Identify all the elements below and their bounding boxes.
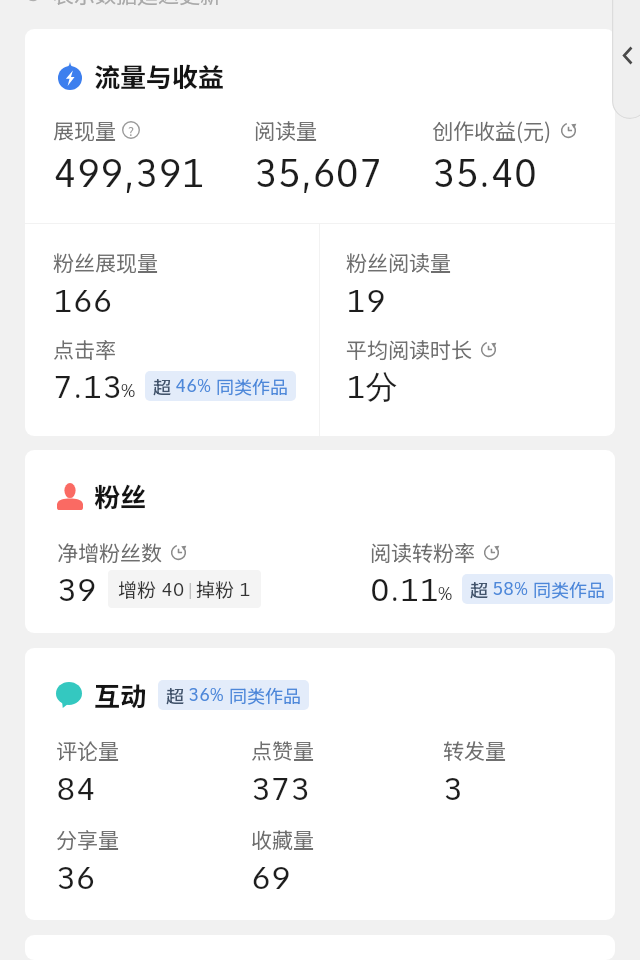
- staticText: 36: [56, 858, 96, 896]
- staticText: 阅读转粉率: [370, 537, 475, 567]
- staticText: 39: [57, 570, 97, 608]
- staticText: |: [185, 578, 196, 600]
- staticText: 同类作品: [533, 576, 605, 602]
- staticText: ?: [128, 121, 134, 139]
- staticText: 1分: [346, 367, 398, 407]
- staticText: 创作收益(元): [432, 115, 552, 145]
- button[interactable]: 超: [158, 680, 309, 710]
- staticText: 互动: [94, 676, 147, 714]
- button[interactable]: 超: [145, 371, 296, 401]
- staticText: 评论量: [56, 735, 119, 765]
- staticText: %: [438, 582, 454, 605]
- staticText: 1: [239, 578, 251, 601]
- button[interactable]: 超: [462, 574, 613, 604]
- staticText: 19: [346, 281, 386, 319]
- staticText: 转发量: [443, 735, 506, 765]
- staticText: %: [121, 379, 137, 402]
- staticText: 同类作品: [216, 373, 288, 399]
- staticText: 69: [251, 858, 291, 896]
- staticText: 0.11: [370, 570, 439, 608]
- staticText: 掉粉: [196, 575, 239, 603]
- staticText: 点击率: [53, 334, 116, 364]
- staticText: 收藏量: [251, 824, 314, 854]
- staticText: 84: [56, 769, 96, 807]
- staticText: 展现量: [53, 115, 116, 145]
- staticText: 超: [153, 373, 171, 399]
- staticText: 平均阅读时长: [346, 334, 472, 364]
- staticText: 同类作品: [229, 682, 301, 708]
- button[interactable]: Collapse panel: [612, 0, 640, 119]
- staticText: 阅读量: [254, 115, 317, 145]
- staticText: 40: [161, 578, 185, 601]
- staticText: 分享量: [56, 824, 119, 854]
- staticText: 35.40: [432, 151, 538, 197]
- staticText: 373: [251, 769, 310, 807]
- staticText: 499,391: [53, 151, 205, 197]
- staticText: 流量与收益: [94, 57, 225, 95]
- staticText: 35,607: [254, 151, 383, 197]
- staticText: 粉丝阅读量: [346, 247, 451, 277]
- staticText: 46%: [175, 375, 212, 397]
- button[interactable]: 增粉: [108, 570, 261, 608]
- staticText: 166: [53, 281, 113, 319]
- staticText: 3: [443, 769, 463, 807]
- staticText: 粉丝展现量: [53, 247, 158, 277]
- staticText: 增粉: [118, 575, 161, 603]
- staticText: 58%: [492, 578, 529, 600]
- staticText: 净增粉丝数: [57, 537, 162, 567]
- staticText: 点赞量: [251, 735, 314, 765]
- staticText: 表示数据延迟更新: [53, 0, 221, 8]
- staticText: 7.13: [53, 367, 122, 405]
- staticText: 超: [166, 682, 184, 708]
- staticText: 36%: [188, 684, 225, 706]
- staticText: 粉丝: [94, 477, 147, 515]
- staticText: 超: [470, 576, 488, 602]
